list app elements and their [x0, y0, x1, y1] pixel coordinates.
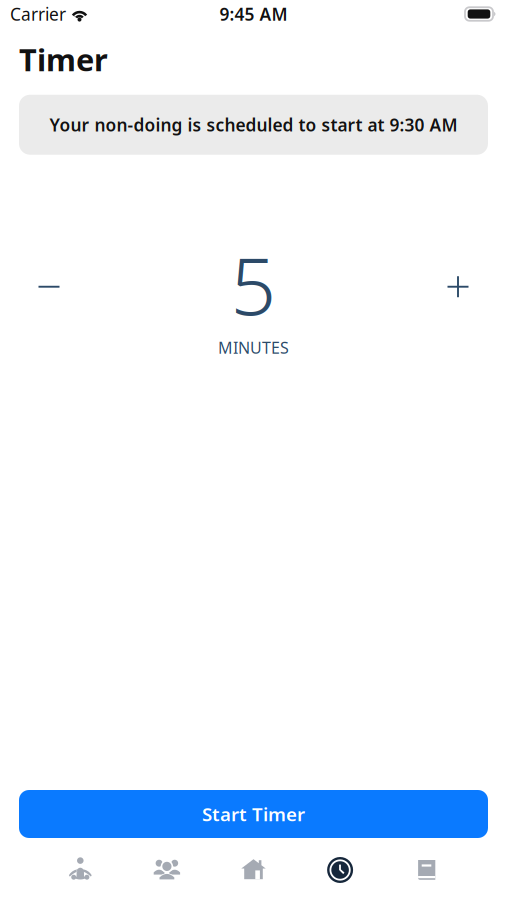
staticText: Your non-doing is scheduled to start at …: [49, 113, 457, 136]
button[interactable]: Increase minutes: [426, 231, 490, 319]
staticText: Timer: [19, 39, 108, 80]
staticText: MINUTES: [218, 337, 289, 358]
button[interactable]: Meditate: [37, 845, 124, 895]
staticText: 9:45 AM: [219, 2, 287, 25]
button[interactable]: Home: [210, 845, 297, 895]
button[interactable]: Timer: [297, 845, 383, 895]
staticText: 5: [230, 231, 276, 337]
button[interactable]: Start Timer: [19, 790, 488, 838]
staticText: Carrier: [10, 2, 66, 25]
staticText: Start Timer: [202, 802, 305, 826]
button[interactable]: Journal: [383, 845, 470, 895]
button[interactable]: Community: [124, 845, 210, 895]
button[interactable]: Decrease minutes: [17, 231, 81, 319]
